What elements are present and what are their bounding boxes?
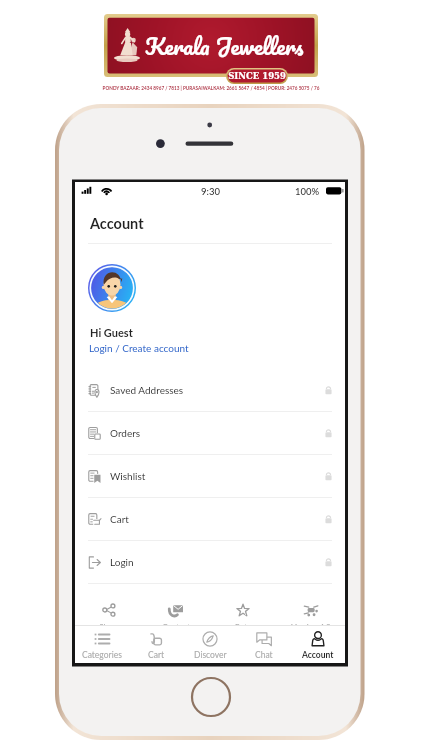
staticText: Chat bbox=[255, 650, 273, 660]
button[interactable]: Login bbox=[75, 541, 345, 584]
staticText: Rate bbox=[235, 622, 251, 632]
button[interactable]: Contact bbox=[142, 603, 209, 632]
button[interactable]: Discover bbox=[183, 625, 237, 663]
staticText: Hi Guest bbox=[90, 326, 133, 339]
button[interactable]: Login / Create account bbox=[89, 342, 189, 354]
staticText: Login / Create account bbox=[89, 342, 189, 354]
staticText: Account bbox=[90, 215, 144, 232]
button[interactable]: Orders bbox=[75, 412, 345, 455]
staticText: PONDY BAZAAR: 2434 8967 / 7813 | PURASAI… bbox=[0, 85, 422, 91]
staticText: Wishlist bbox=[110, 470, 146, 482]
button[interactable]: Saved Addresses bbox=[75, 369, 345, 412]
staticText: SINCE 1959 bbox=[226, 71, 288, 81]
button[interactable]: Wishlist bbox=[75, 455, 345, 498]
staticText: Account bbox=[302, 650, 334, 660]
button[interactable]: Categories bbox=[75, 625, 129, 663]
staticText: Version 4.0 bbox=[291, 622, 331, 632]
staticText: Contact bbox=[162, 622, 190, 632]
staticText: Orders bbox=[110, 427, 141, 439]
button[interactable]: Chat bbox=[237, 625, 291, 663]
staticText: Login bbox=[110, 556, 134, 568]
button[interactable]: Rate bbox=[209, 603, 277, 632]
staticText: Cart bbox=[148, 650, 165, 660]
button[interactable]: Version 4.0 bbox=[277, 603, 345, 632]
staticText: Share bbox=[99, 622, 119, 632]
staticText: Categories bbox=[82, 650, 122, 660]
button[interactable]: Cart bbox=[75, 498, 345, 541]
staticText: Discover bbox=[194, 650, 227, 660]
button[interactable]: Share bbox=[75, 603, 142, 632]
staticText: 9:30 bbox=[201, 186, 220, 197]
staticText: Kerala Jewellers bbox=[145, 27, 304, 65]
button[interactable]: Account bbox=[291, 625, 345, 663]
button[interactable]: Cart bbox=[129, 625, 183, 663]
staticText: Saved Addresses bbox=[110, 384, 184, 396]
staticText: 100% bbox=[295, 186, 320, 197]
staticText: Cart bbox=[110, 513, 129, 525]
